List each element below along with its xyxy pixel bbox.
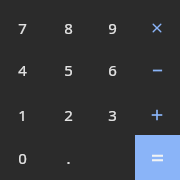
button[interactable]: Decimal point (46, 137, 90, 179)
staticText: . (66, 148, 71, 168)
staticText: 4 (18, 60, 27, 80)
staticText: 3 (108, 105, 117, 125)
staticText: 8 (64, 18, 73, 38)
button[interactable]: Two (46, 94, 90, 136)
button[interactable]: Eight (46, 7, 90, 49)
button[interactable]: One (0, 94, 44, 136)
button[interactable]: Add (135, 94, 179, 136)
staticText: 1 (18, 105, 27, 125)
staticText: 0 (18, 148, 27, 168)
staticText: 9 (108, 18, 117, 38)
staticText: 6 (108, 60, 117, 80)
staticText: 7 (18, 18, 27, 38)
button[interactable]: Equals (135, 135, 180, 180)
button[interactable]: Four (0, 49, 44, 91)
button[interactable]: Subtract (135, 49, 179, 91)
button[interactable]: Six (90, 49, 134, 91)
button[interactable]: Nine (90, 7, 134, 49)
button[interactable]: Multiply (135, 7, 179, 49)
button[interactable]: Seven (0, 7, 44, 49)
button[interactable]: Five (46, 49, 90, 91)
button[interactable]: Three (90, 94, 134, 136)
staticText: 5 (64, 60, 73, 80)
staticText: 2 (64, 105, 73, 125)
button[interactable]: Zero (0, 137, 44, 179)
